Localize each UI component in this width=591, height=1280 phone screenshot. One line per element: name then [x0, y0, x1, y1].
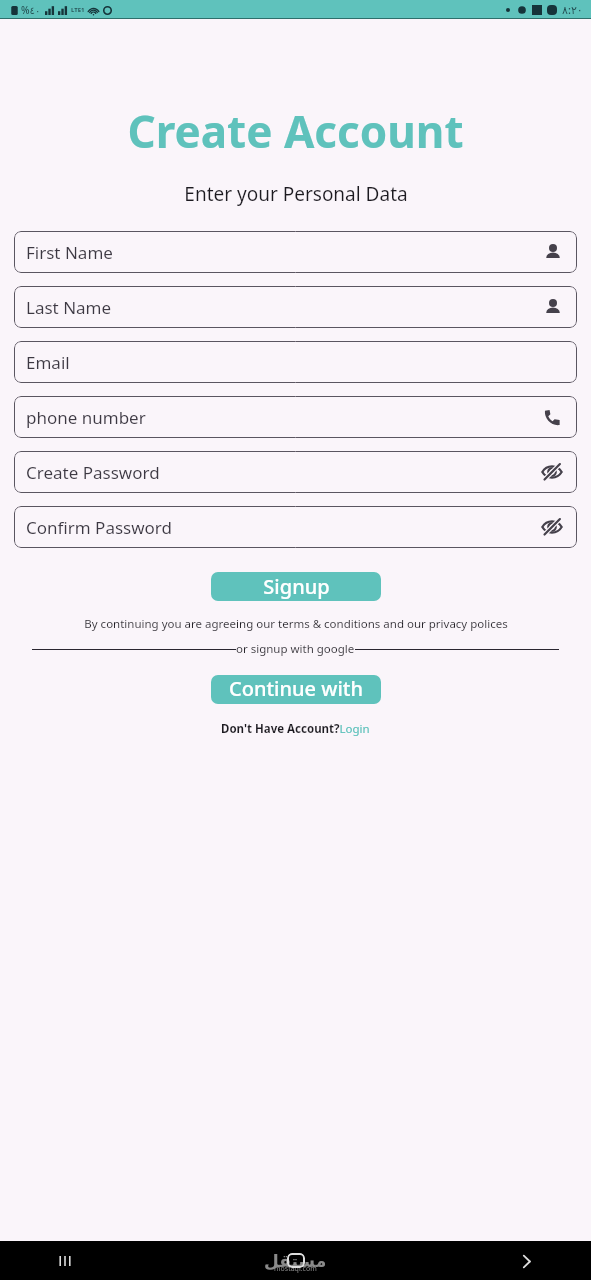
button[interactable]: phone number [14, 396, 577, 438]
other: Phone [542, 407, 563, 428]
staticText: Email [26, 351, 70, 374]
button[interactable]: Last Name [14, 286, 577, 328]
button[interactable]: Don't Have Account?Login [221, 721, 370, 737]
button[interactable]: Continue with Google [211, 675, 381, 704]
staticText: مستقل [264, 1251, 327, 1271]
button[interactable]: Recent apps [48, 1244, 82, 1278]
button[interactable]: Confirm Password [14, 506, 577, 548]
staticText: Create Account [127, 101, 464, 161]
staticText: Enter your Personal Data [184, 181, 408, 207]
staticText: %٤٠ [21, 3, 41, 17]
button[interactable]: Home [287, 1253, 305, 1268]
staticText: Signup [263, 573, 330, 600]
other: Toggle password visibility [541, 516, 563, 538]
staticText: LTE1 [71, 6, 85, 14]
staticText: Don't Have Account?Login [221, 721, 370, 737]
button[interactable]: Create Password [14, 451, 577, 493]
staticText: or signup with google [236, 641, 355, 657]
button[interactable]: Email [14, 341, 577, 383]
staticText: mostaql.com [274, 1264, 317, 1274]
other: Person [543, 297, 563, 317]
button[interactable]: First Name [14, 231, 577, 273]
staticText: Create Password [26, 461, 160, 484]
staticText: Confirm Password [26, 516, 172, 539]
staticText: phone number [26, 406, 146, 429]
staticText: Continue with Google [211, 675, 381, 704]
button[interactable]: Signup [211, 572, 381, 601]
staticText: First Name [26, 241, 113, 264]
staticText: By continuing you are agreeing our terms… [84, 616, 508, 632]
staticText: ٨:٢٠ [562, 2, 583, 17]
button[interactable]: Back [509, 1244, 543, 1278]
other: Person [543, 242, 563, 262]
staticText: Last Name [26, 296, 112, 319]
other: Toggle password visibility [541, 461, 563, 483]
